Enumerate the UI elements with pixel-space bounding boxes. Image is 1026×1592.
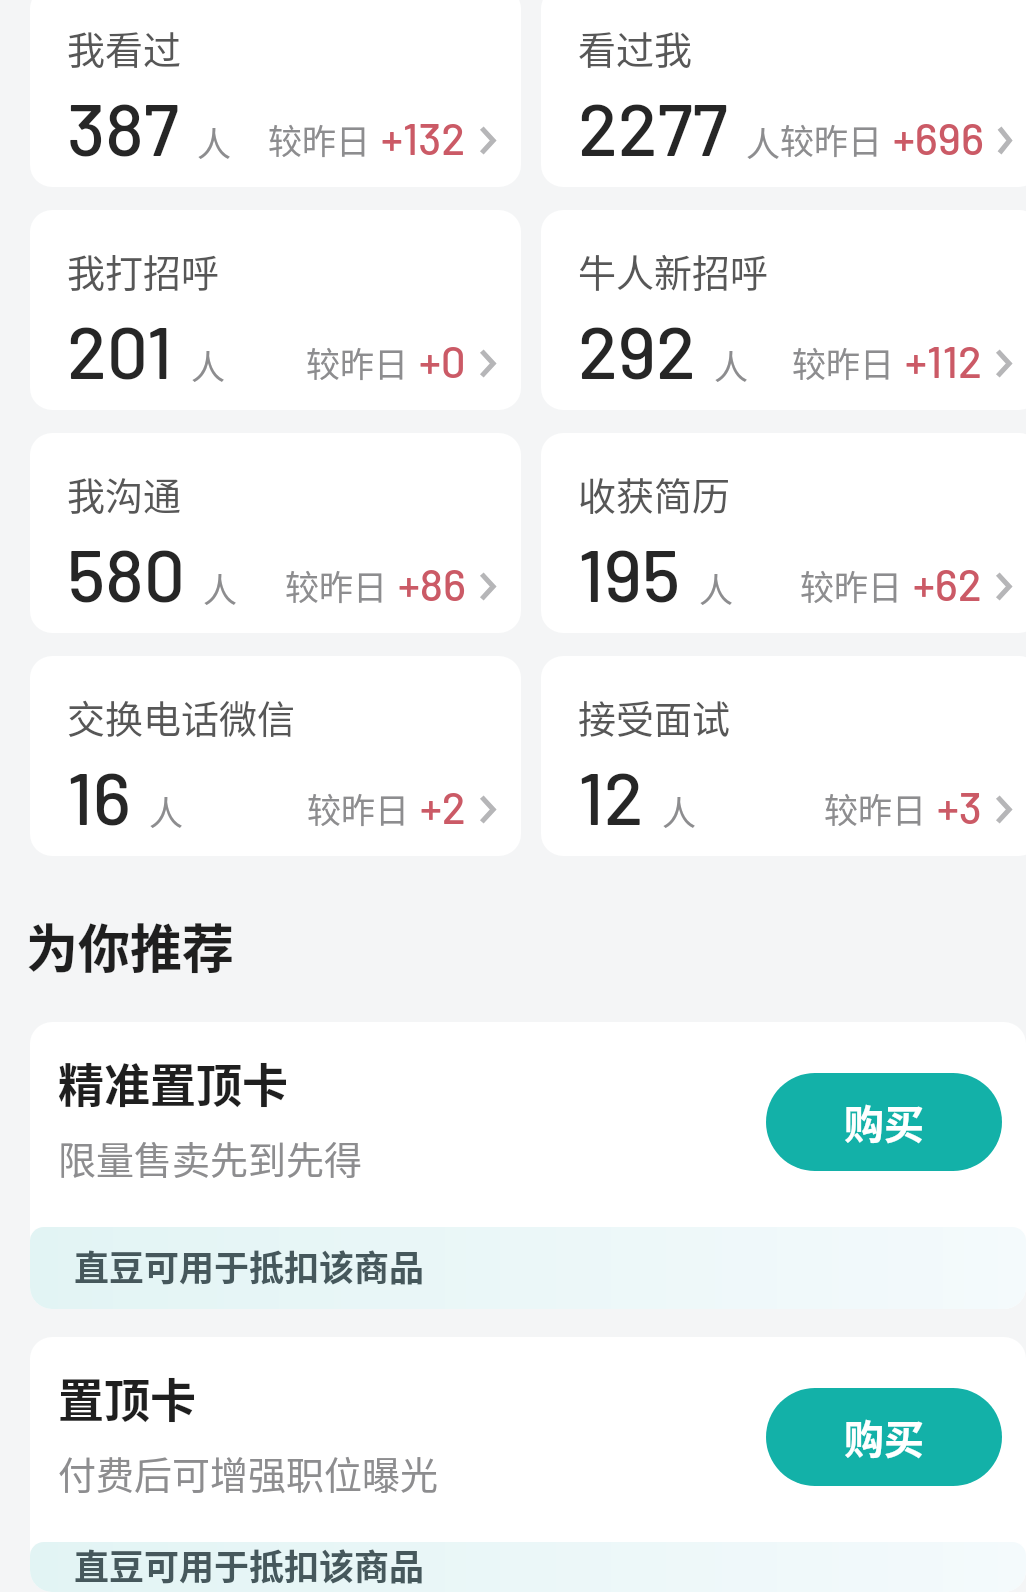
button[interactable]: 交换电话微信 bbox=[30, 656, 521, 856]
staticText: 195 bbox=[578, 529, 681, 617]
button[interactable]: 购买 精准置顶卡 bbox=[766, 1073, 1002, 1171]
staticText: 牛人新招呼 bbox=[578, 243, 769, 298]
button[interactable]: 购买 置顶卡 bbox=[766, 1388, 1002, 1486]
staticText: 2277 bbox=[578, 83, 728, 171]
button[interactable]: 我打招呼 bbox=[30, 210, 521, 410]
staticText: 人 bbox=[203, 564, 237, 613]
staticText: 看过我 bbox=[578, 20, 693, 75]
staticText: 直豆可用于抵扣该商品 bbox=[74, 1542, 425, 1589]
staticText: 292 bbox=[578, 306, 696, 394]
staticText: 购买 bbox=[844, 1093, 924, 1151]
staticText: 我沟通 bbox=[67, 466, 182, 521]
staticText: 12 bbox=[578, 752, 644, 840]
staticText: 较昨日 bbox=[285, 561, 387, 610]
staticText: 人 bbox=[662, 787, 696, 836]
staticText: 人 bbox=[714, 341, 748, 390]
button[interactable]: 精准置顶卡 bbox=[30, 1022, 1026, 1309]
staticText: 580 bbox=[67, 529, 185, 617]
staticText: 较昨日 bbox=[306, 338, 408, 387]
button[interactable]: 我沟通 bbox=[30, 433, 521, 633]
staticText: 交换电话微信 bbox=[67, 689, 296, 744]
button[interactable]: 收获简历 bbox=[541, 433, 1026, 633]
staticText: 限量售卖先到先得 bbox=[58, 1130, 363, 1185]
staticText: 接受面试 bbox=[578, 689, 731, 744]
staticText: +0 bbox=[419, 334, 466, 387]
staticText: 购买 bbox=[844, 1408, 924, 1466]
button[interactable]: 看过我 bbox=[541, 0, 1026, 187]
staticText: +132 bbox=[381, 111, 466, 164]
button[interactable]: 置顶卡 bbox=[30, 1337, 1026, 1592]
staticText: +86 bbox=[398, 557, 466, 610]
staticText: 人 bbox=[191, 341, 225, 390]
staticText: 我打招呼 bbox=[67, 243, 220, 298]
button[interactable]: 接受面试 bbox=[541, 656, 1026, 856]
staticText: 我看过 bbox=[67, 20, 182, 75]
staticText: 较昨日 bbox=[792, 338, 894, 387]
staticText: 387 bbox=[67, 83, 179, 171]
staticText: 人 bbox=[746, 118, 780, 167]
staticText: +112 bbox=[905, 334, 982, 387]
staticText: +62 bbox=[913, 557, 982, 610]
staticText: 较昨日 bbox=[824, 784, 926, 833]
staticText: +3 bbox=[937, 780, 982, 833]
staticText: 直豆可用于抵扣该商品 bbox=[74, 1240, 425, 1291]
staticText: 为你推荐 bbox=[26, 908, 235, 983]
staticText: 16 bbox=[67, 752, 131, 840]
button[interactable]: 牛人新招呼 bbox=[541, 210, 1026, 410]
staticText: +696 bbox=[893, 111, 984, 164]
staticText: 较昨日 bbox=[780, 115, 882, 164]
staticText: 较昨日 bbox=[307, 784, 409, 833]
staticText: 人 bbox=[149, 787, 183, 836]
staticText: 收获简历 bbox=[578, 466, 731, 521]
staticText: 置顶卡 bbox=[58, 1364, 196, 1431]
staticText: +2 bbox=[420, 780, 466, 833]
staticText: 精准置顶卡 bbox=[58, 1049, 288, 1116]
staticText: 较昨日 bbox=[800, 561, 902, 610]
staticText: 201 bbox=[67, 306, 173, 394]
staticText: 人 bbox=[699, 564, 733, 613]
staticText: 付费后可增强职位曝光 bbox=[58, 1445, 439, 1500]
staticText: 较昨日 bbox=[268, 115, 370, 164]
staticText: 人 bbox=[197, 118, 231, 167]
button[interactable]: 我看过 bbox=[30, 0, 521, 187]
